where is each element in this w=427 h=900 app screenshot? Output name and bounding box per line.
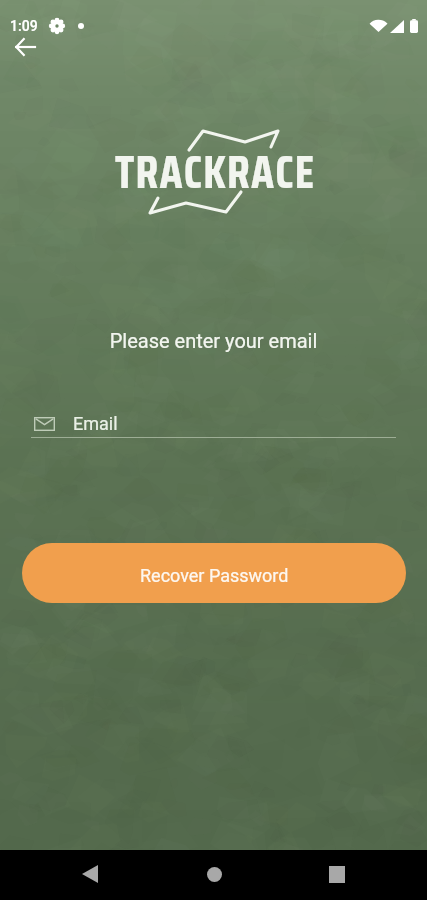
button[interactable]: Recover Password bbox=[22, 543, 406, 603]
staticText: TRACKRACE bbox=[115, 136, 316, 208]
button[interactable]: Back bbox=[5, 32, 45, 62]
button[interactable]: Home bbox=[190, 850, 238, 898]
staticText: Please enter your email bbox=[0, 329, 427, 352]
button[interactable]: Back bbox=[66, 850, 114, 898]
staticText: Recover Password bbox=[140, 565, 289, 586]
staticText: 1:09 bbox=[10, 18, 38, 34]
button[interactable]: Recents bbox=[313, 850, 361, 898]
staticText: Email bbox=[73, 413, 118, 434]
